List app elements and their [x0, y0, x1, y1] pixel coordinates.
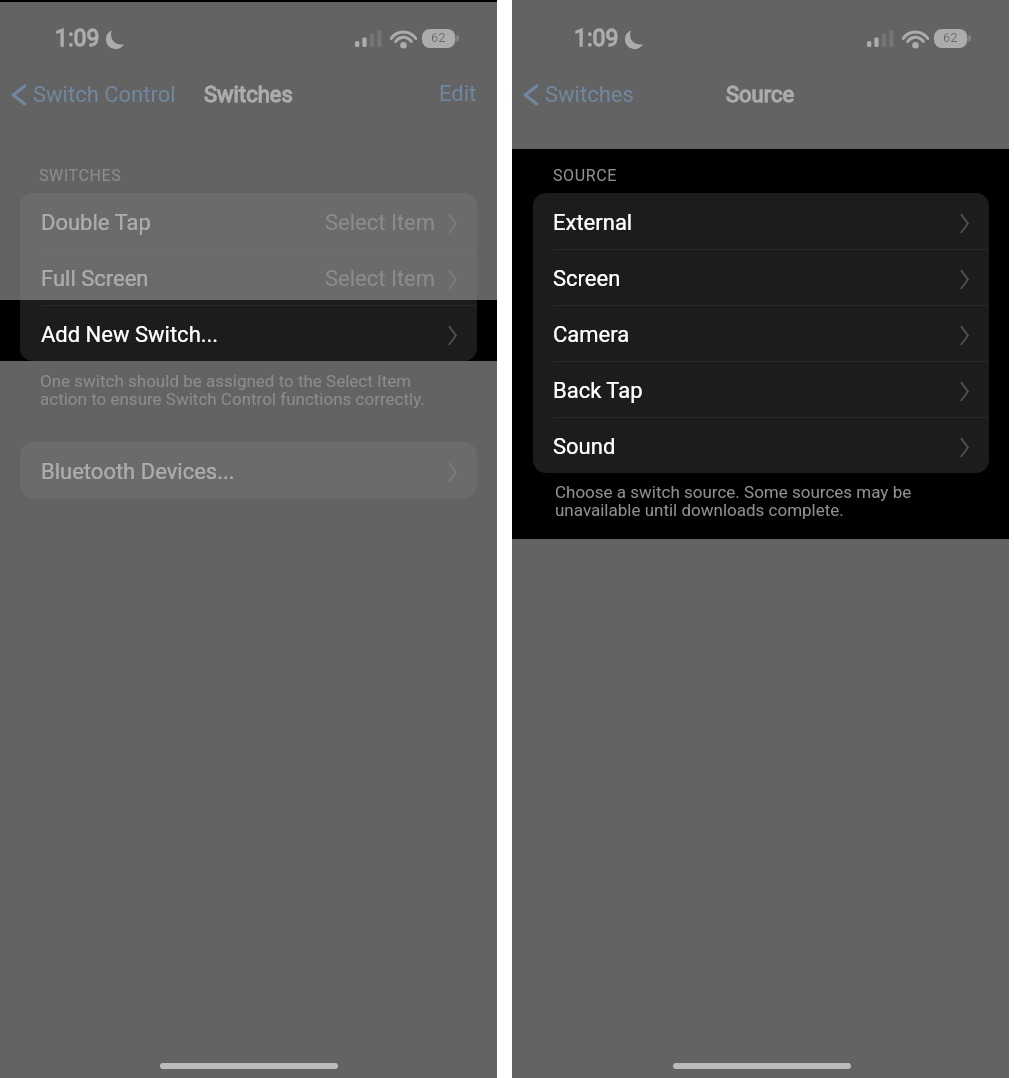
- staticText: Edit: [439, 81, 477, 107]
- button[interactable]: Back Tap: [533, 361, 989, 417]
- button[interactable]: Sound: [533, 417, 989, 473]
- staticText: Sound: [553, 434, 616, 460]
- staticText: Add New Switch...: [41, 322, 219, 348]
- staticText: Select Item: [325, 210, 436, 236]
- button[interactable]: Back to Switch Control: [6, 80, 176, 110]
- staticText: Bluetooth Devices...: [41, 459, 235, 485]
- button[interactable]: Full Screen: [20, 249, 477, 305]
- staticText: Switch Control: [33, 82, 176, 108]
- staticText: Double Tap: [41, 210, 151, 236]
- staticText: Back Tap: [553, 378, 643, 404]
- staticText: One switch should be assigned to the Sel…: [40, 371, 470, 409]
- button[interactable]: External: [533, 193, 989, 249]
- staticText: 1:09: [55, 25, 100, 52]
- staticText: Screen: [553, 266, 621, 292]
- staticText: Full Screen: [41, 266, 149, 292]
- button[interactable]: Back to Switches: [518, 80, 634, 110]
- button[interactable]: Edit: [421, 68, 497, 120]
- staticText: SWITCHES: [39, 166, 122, 185]
- staticText: Select Item: [325, 266, 436, 292]
- staticText: SOURCE: [553, 166, 617, 185]
- staticText: Source: [726, 82, 795, 108]
- staticText: 1:09: [574, 25, 619, 52]
- staticText: External: [553, 210, 633, 236]
- staticText: Choose a switch source. Some sources may…: [555, 482, 975, 520]
- button[interactable]: Add New Switch...: [20, 305, 477, 361]
- staticText: 62: [431, 30, 446, 45]
- button[interactable]: Double Tap: [20, 193, 477, 249]
- staticText: Switches: [545, 82, 634, 108]
- button[interactable]: Camera: [533, 305, 989, 361]
- button[interactable]: Bluetooth Devices...: [20, 442, 477, 498]
- staticText: 62: [943, 30, 958, 45]
- staticText: Switches: [204, 82, 293, 108]
- staticText: Camera: [553, 322, 630, 348]
- button[interactable]: Screen: [533, 249, 989, 305]
